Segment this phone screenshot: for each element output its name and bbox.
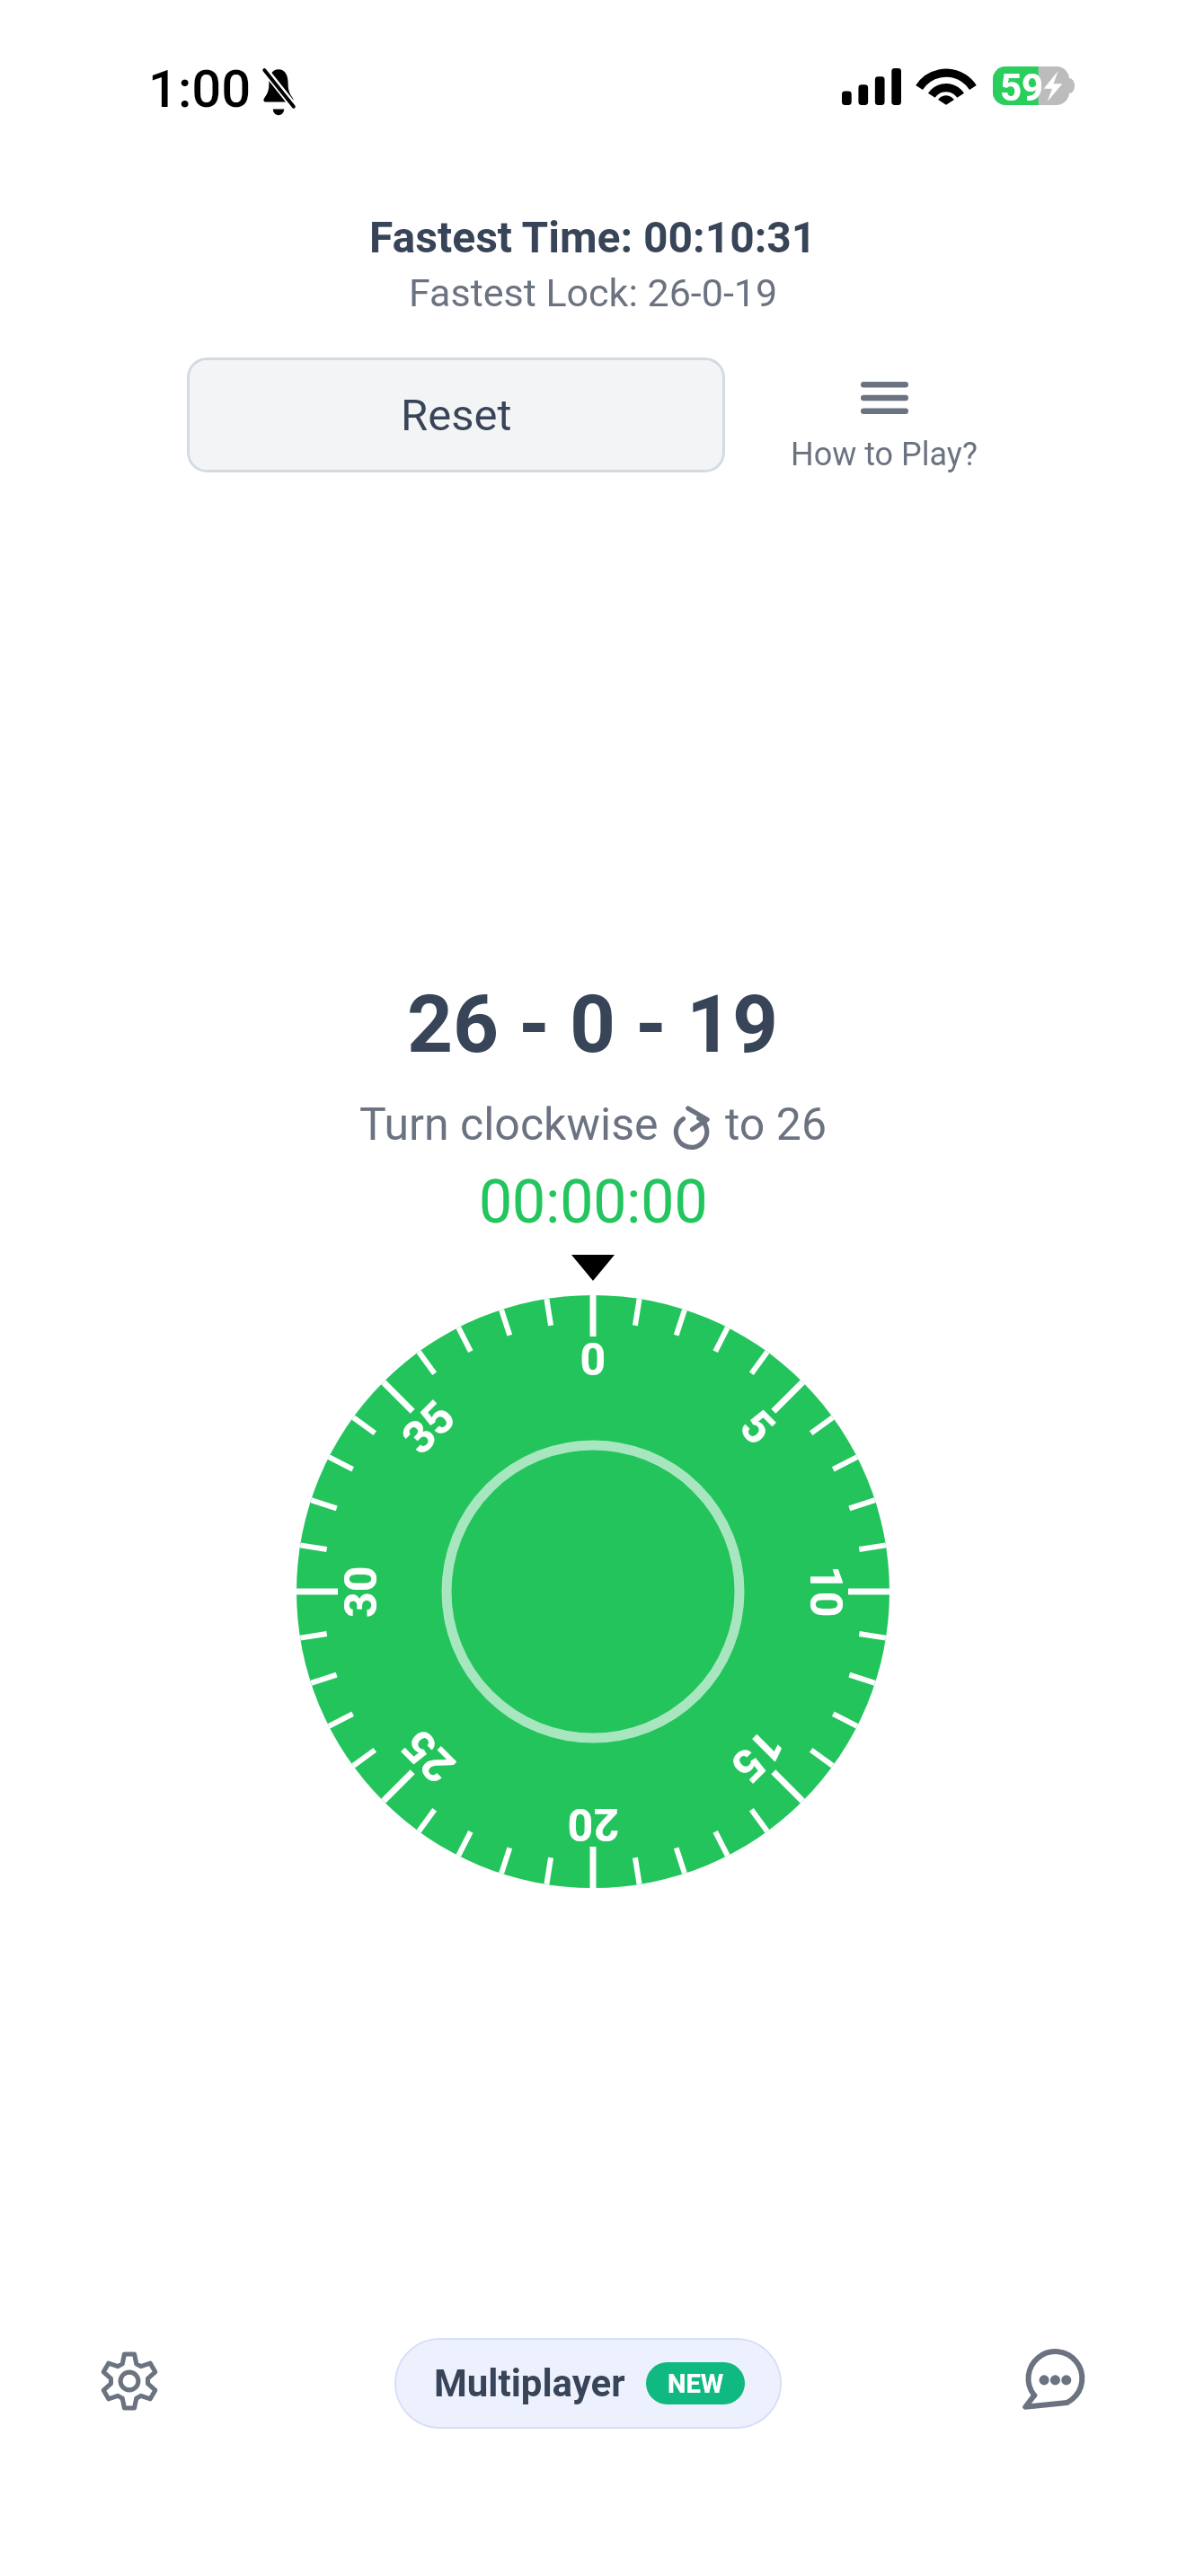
button[interactable]: Multiplayer [394, 2338, 782, 2429]
button[interactable]: Settings [90, 2342, 169, 2421]
staticText: to 26 [725, 1098, 827, 1151]
staticText: Fastest Time: 00:10:31 [369, 212, 817, 262]
button[interactable]: Chat [1012, 2342, 1091, 2421]
staticText: How to Play? [791, 436, 978, 473]
staticText: 59 [1000, 66, 1044, 104]
staticText: Reset [401, 390, 512, 441]
staticText: 00:00:00 [479, 1168, 708, 1237]
staticText: Multiplayer [434, 2361, 625, 2405]
button[interactable]: Combination dial [296, 1295, 889, 1888]
staticText: NEW [668, 2369, 724, 2399]
staticText: Fastest Lock: 26-0-19 [409, 270, 778, 315]
button[interactable]: How to Play? [758, 382, 1010, 473]
staticText: Turn clockwise [359, 1098, 659, 1151]
staticText: 1:00 [148, 58, 252, 119]
button[interactable]: Reset [187, 357, 725, 472]
staticText: 26 - 0 - 19 [407, 977, 779, 1071]
